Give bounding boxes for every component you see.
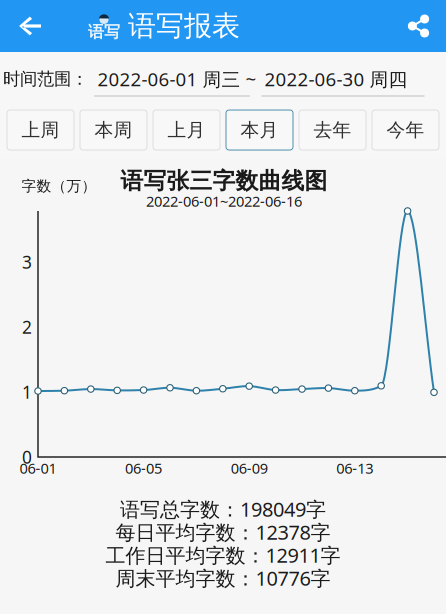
staticText: 0 bbox=[22, 445, 32, 468]
staticText: 每日平均字数：12378字 bbox=[115, 519, 330, 545]
staticText: 去年 bbox=[313, 118, 351, 141]
staticText: 上月 bbox=[167, 118, 205, 141]
button[interactable]: 本月 bbox=[226, 110, 293, 150]
staticText: 1 bbox=[22, 380, 32, 403]
staticText: 06-09 bbox=[231, 458, 268, 478]
button[interactable]: Back bbox=[0, 0, 60, 52]
staticText: 语写报表 bbox=[128, 9, 240, 43]
staticText: 字数（万） bbox=[21, 177, 96, 195]
staticText: 周末平均字数：10776字 bbox=[115, 565, 330, 591]
staticText: 工作日平均字数：12911字 bbox=[105, 542, 340, 568]
button[interactable]: 上月 bbox=[153, 110, 220, 150]
staticText: 2022-06-30 周四 bbox=[264, 67, 407, 91]
staticText: 本月 bbox=[240, 118, 278, 141]
staticText: 06-05 bbox=[125, 458, 162, 478]
button[interactable]: 本周 bbox=[80, 110, 147, 150]
staticText: 语写张三字数曲线图 bbox=[120, 167, 327, 195]
staticText: 上周 bbox=[21, 118, 59, 141]
button[interactable]: 2022-06-01 周三 bbox=[91, 61, 247, 97]
staticText: 2022-06-01 周三 bbox=[97, 67, 240, 91]
button[interactable]: Share bbox=[391, 0, 446, 52]
button[interactable]: 今年 bbox=[372, 110, 439, 150]
staticText: 时间范围： bbox=[3, 68, 88, 90]
staticText: 语写总字数：198049字 bbox=[120, 496, 326, 522]
staticText: 2022-06-01~2022-06-16 bbox=[146, 191, 302, 211]
staticText: 3 bbox=[22, 250, 32, 273]
button[interactable]: 上周 bbox=[7, 110, 74, 150]
button[interactable]: 2022-06-30 周四 bbox=[254, 61, 417, 97]
staticText: 语写 bbox=[88, 22, 120, 42]
staticText: 06-01 bbox=[19, 458, 56, 478]
staticText: 06-13 bbox=[336, 458, 373, 478]
staticText: 本周 bbox=[94, 118, 132, 141]
staticText: 2 bbox=[22, 315, 32, 338]
button[interactable]: 去年 bbox=[299, 110, 366, 150]
staticText: ~ bbox=[245, 67, 256, 91]
staticText: 今年 bbox=[386, 118, 424, 141]
